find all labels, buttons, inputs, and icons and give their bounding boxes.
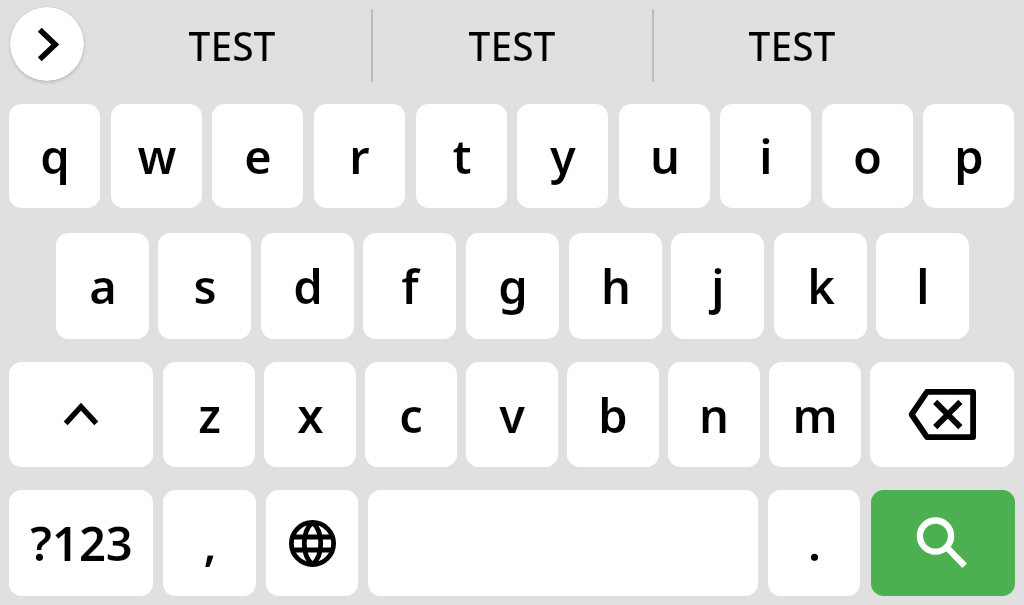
staticText: x (297, 383, 324, 447)
staticText: d (293, 254, 323, 318)
button[interactable]: m (769, 362, 861, 467)
button[interactable]: j (671, 233, 764, 339)
staticText: m (792, 383, 838, 447)
button[interactable]: ?123 (9, 490, 153, 596)
staticText: . (808, 511, 821, 575)
button[interactable]: l (876, 233, 969, 339)
staticText: e (244, 124, 272, 188)
button[interactable]: More suggestions (10, 7, 84, 81)
button[interactable]: t (416, 104, 507, 208)
staticText: TEST (748, 19, 836, 72)
button[interactable]: g (466, 233, 559, 339)
staticText: ?123 (30, 511, 133, 575)
button[interactable]: TEST (372, 0, 652, 90)
button[interactable]: TEST (652, 0, 932, 90)
staticText: k (807, 254, 835, 318)
staticText: c (399, 383, 423, 447)
button[interactable]: h (569, 233, 662, 339)
staticText: p (954, 124, 984, 188)
button[interactable]: TEST (92, 0, 372, 90)
staticText: q (40, 124, 70, 188)
button[interactable]: c (365, 362, 457, 467)
button[interactable]: d (261, 233, 354, 339)
button[interactable]: x (264, 362, 356, 467)
button[interactable]: e (212, 104, 303, 208)
button[interactable]: p (923, 104, 1014, 208)
button[interactable]: s (158, 233, 251, 339)
staticText: w (137, 124, 177, 188)
button[interactable]: n (668, 362, 760, 467)
button[interactable]: i (720, 104, 811, 208)
button[interactable]: Shift (9, 362, 153, 467)
staticText: o (853, 124, 882, 188)
button[interactable]: q (9, 104, 100, 208)
staticText: v (499, 383, 525, 447)
button[interactable]: v (466, 362, 558, 467)
button[interactable]: , (163, 490, 256, 596)
button[interactable]: b (567, 362, 659, 467)
button[interactable]: Search (871, 490, 1015, 596)
staticText: b (598, 383, 628, 447)
staticText: a (89, 254, 117, 318)
staticText: TEST (188, 19, 276, 72)
button[interactable]: k (774, 233, 867, 339)
button[interactable]: f (363, 233, 456, 339)
staticText: i (759, 124, 773, 188)
staticText: s (193, 254, 217, 318)
staticText: , (203, 511, 217, 575)
staticText: l (916, 254, 930, 318)
staticText: f (401, 254, 419, 318)
staticText: g (498, 254, 528, 318)
staticText: TEST (468, 19, 556, 72)
staticText: h (601, 254, 631, 318)
staticText: y (550, 124, 576, 188)
button[interactable]: Change language (266, 490, 358, 596)
button[interactable]: . (768, 490, 860, 596)
button[interactable]: Backspace (870, 362, 1014, 467)
staticText: j (711, 254, 725, 318)
staticText: u (650, 124, 680, 188)
button[interactable]: o (822, 104, 913, 208)
button[interactable]: y (517, 104, 608, 208)
staticText: z (198, 383, 221, 447)
button[interactable]: a (56, 233, 149, 339)
staticText: t (452, 124, 472, 188)
staticText: r (349, 124, 370, 188)
button[interactable]: u (619, 104, 710, 208)
staticText: n (699, 383, 729, 447)
button[interactable]: r (314, 104, 405, 208)
button[interactable]: z (163, 362, 255, 467)
button[interactable]: w (111, 104, 202, 208)
